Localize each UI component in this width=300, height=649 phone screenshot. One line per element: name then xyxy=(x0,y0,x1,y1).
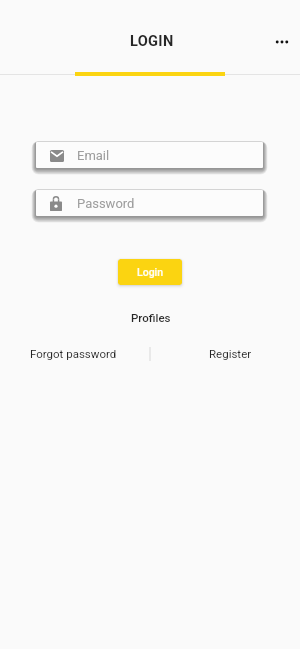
button[interactable]: Login xyxy=(118,259,182,285)
button[interactable]: Register xyxy=(205,343,256,364)
button[interactable]: More options xyxy=(266,26,298,58)
staticText: Email xyxy=(77,148,110,163)
button[interactable]: Forgot password xyxy=(26,343,121,364)
button[interactable]: Profiles xyxy=(125,307,177,328)
button[interactable]: Password xyxy=(36,190,263,216)
button[interactable]: Email xyxy=(36,142,263,168)
staticText: Password xyxy=(77,196,135,211)
staticText: LOGIN xyxy=(130,32,174,49)
staticText: Login xyxy=(137,266,164,278)
